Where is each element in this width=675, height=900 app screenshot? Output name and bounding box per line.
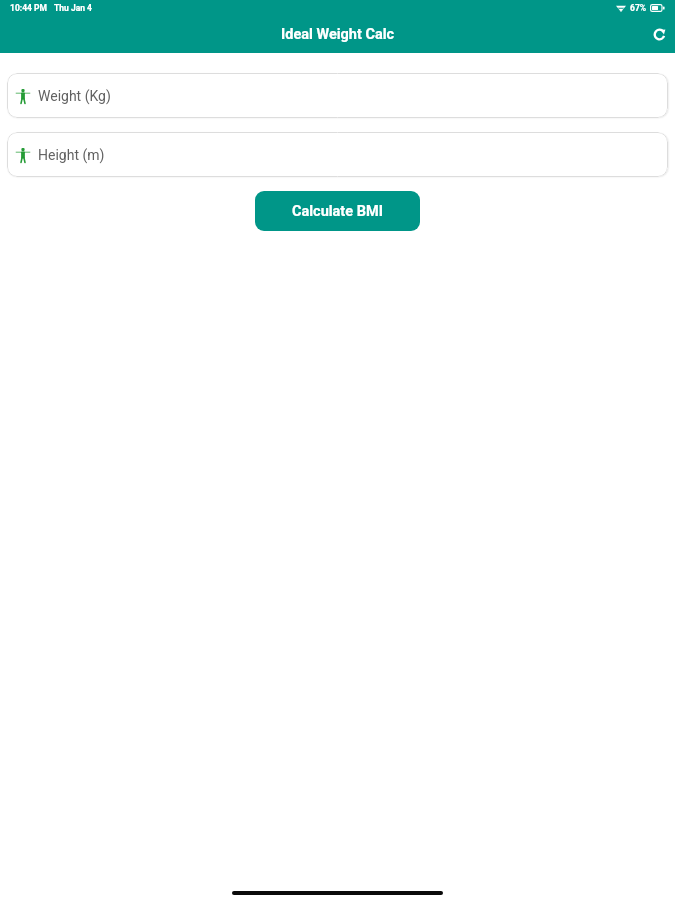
button[interactable]: Refresh [651, 26, 667, 42]
staticText: Calculate BMI [292, 203, 383, 220]
staticText: Ideal Weight Calc [281, 26, 395, 43]
button[interactable]: Weight (Kg) [7, 73, 668, 118]
staticText: 67% [630, 3, 647, 13]
staticText: 10:44 PM [10, 3, 47, 13]
staticText: Height (m) [38, 147, 105, 163]
staticText: Weight (Kg) [38, 88, 111, 104]
staticText: Thu Jan 4 [54, 3, 92, 13]
button[interactable]: Height (m) [7, 132, 668, 177]
button[interactable]: Calculate BMI [255, 191, 420, 231]
